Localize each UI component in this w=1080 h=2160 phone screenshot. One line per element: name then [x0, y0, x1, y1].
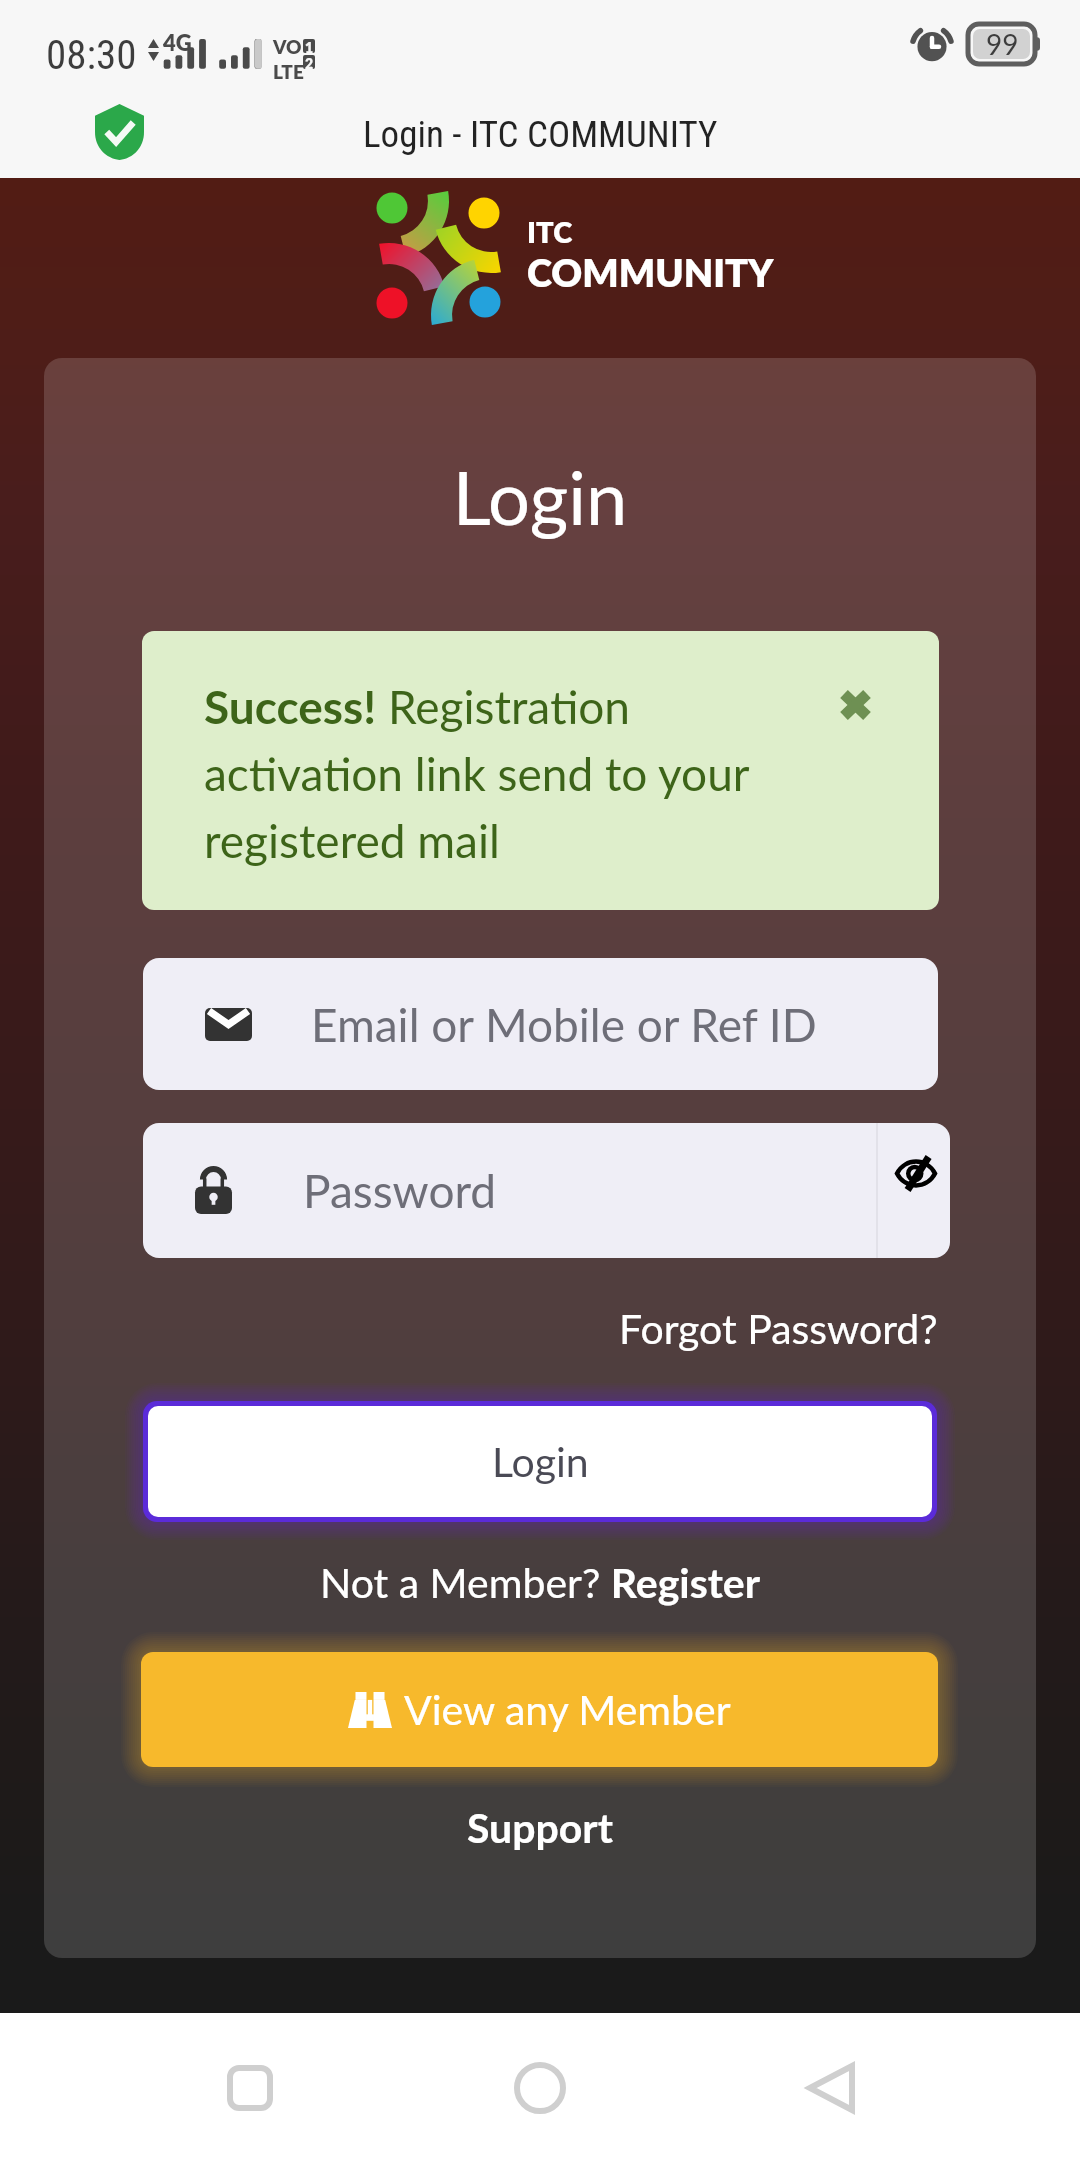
staticText: Support [467, 1803, 613, 1852]
staticText: COMMUNITY [527, 249, 774, 295]
button[interactable]: View any Member [141, 1652, 938, 1767]
button[interactable]: Home [499, 2047, 581, 2129]
button[interactable]: Recents [209, 2047, 291, 2129]
staticText: Success! Registration activation link se… [204, 679, 792, 868]
button[interactable]: Support [467, 1803, 613, 1852]
staticText: VO [273, 35, 302, 58]
staticText: Forgot Password? [619, 1304, 938, 1353]
staticText: 2 [305, 55, 314, 69]
button[interactable]: Close [825, 675, 885, 735]
staticText: 1 [305, 39, 314, 53]
button[interactable]: Show password [878, 1123, 950, 1258]
button[interactable]: Login [148, 1406, 932, 1517]
staticText: 08:30 [46, 31, 137, 79]
staticText: View any Member [404, 1685, 731, 1734]
staticText: Password [303, 1163, 497, 1218]
button[interactable]: Not a Member? Register [320, 1558, 761, 1607]
staticText: ITC [527, 214, 573, 249]
button[interactable]: Password [143, 1123, 950, 1258]
staticText: Login [492, 1437, 589, 1486]
staticText: LTE [273, 60, 304, 83]
staticText: 99 [986, 27, 1019, 61]
staticText: Login [0, 452, 1080, 541]
staticText: Email or Mobile or Ref ID [311, 997, 817, 1052]
button[interactable]: Email or Mobile or Ref ID [143, 958, 938, 1090]
button[interactable]: Back [790, 2047, 872, 2129]
button[interactable]: Forgot Password? [619, 1304, 938, 1353]
staticText: 4G [163, 29, 192, 55]
staticText: Login - ITC COMMUNITY [363, 113, 718, 156]
staticText: Not a Member? Register [320, 1558, 761, 1607]
